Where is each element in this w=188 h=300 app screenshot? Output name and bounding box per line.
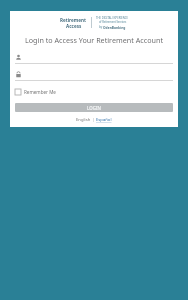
button[interactable]: Password [15, 71, 173, 81]
staticText: Remember Me [24, 89, 56, 95]
staticText: Retirement [60, 17, 87, 23]
staticText: | [91, 117, 96, 123]
button[interactable]: Username [15, 54, 173, 64]
staticText: of Retirement Services [99, 20, 127, 24]
button[interactable]: Español [96, 117, 112, 123]
staticText: OdenBanking [103, 25, 126, 29]
button[interactable]: English [76, 117, 91, 123]
staticText: THE DIGITAL EXPERIENCE [96, 16, 129, 20]
staticText: Login to Access Your Retirement Account [10, 35, 178, 45]
staticText: by [99, 25, 103, 29]
button[interactable]: LOGIN [15, 103, 173, 112]
staticText: LOGIN [87, 105, 101, 111]
button[interactable]: Remember Me [15, 88, 56, 96]
staticText: Access [66, 23, 82, 29]
